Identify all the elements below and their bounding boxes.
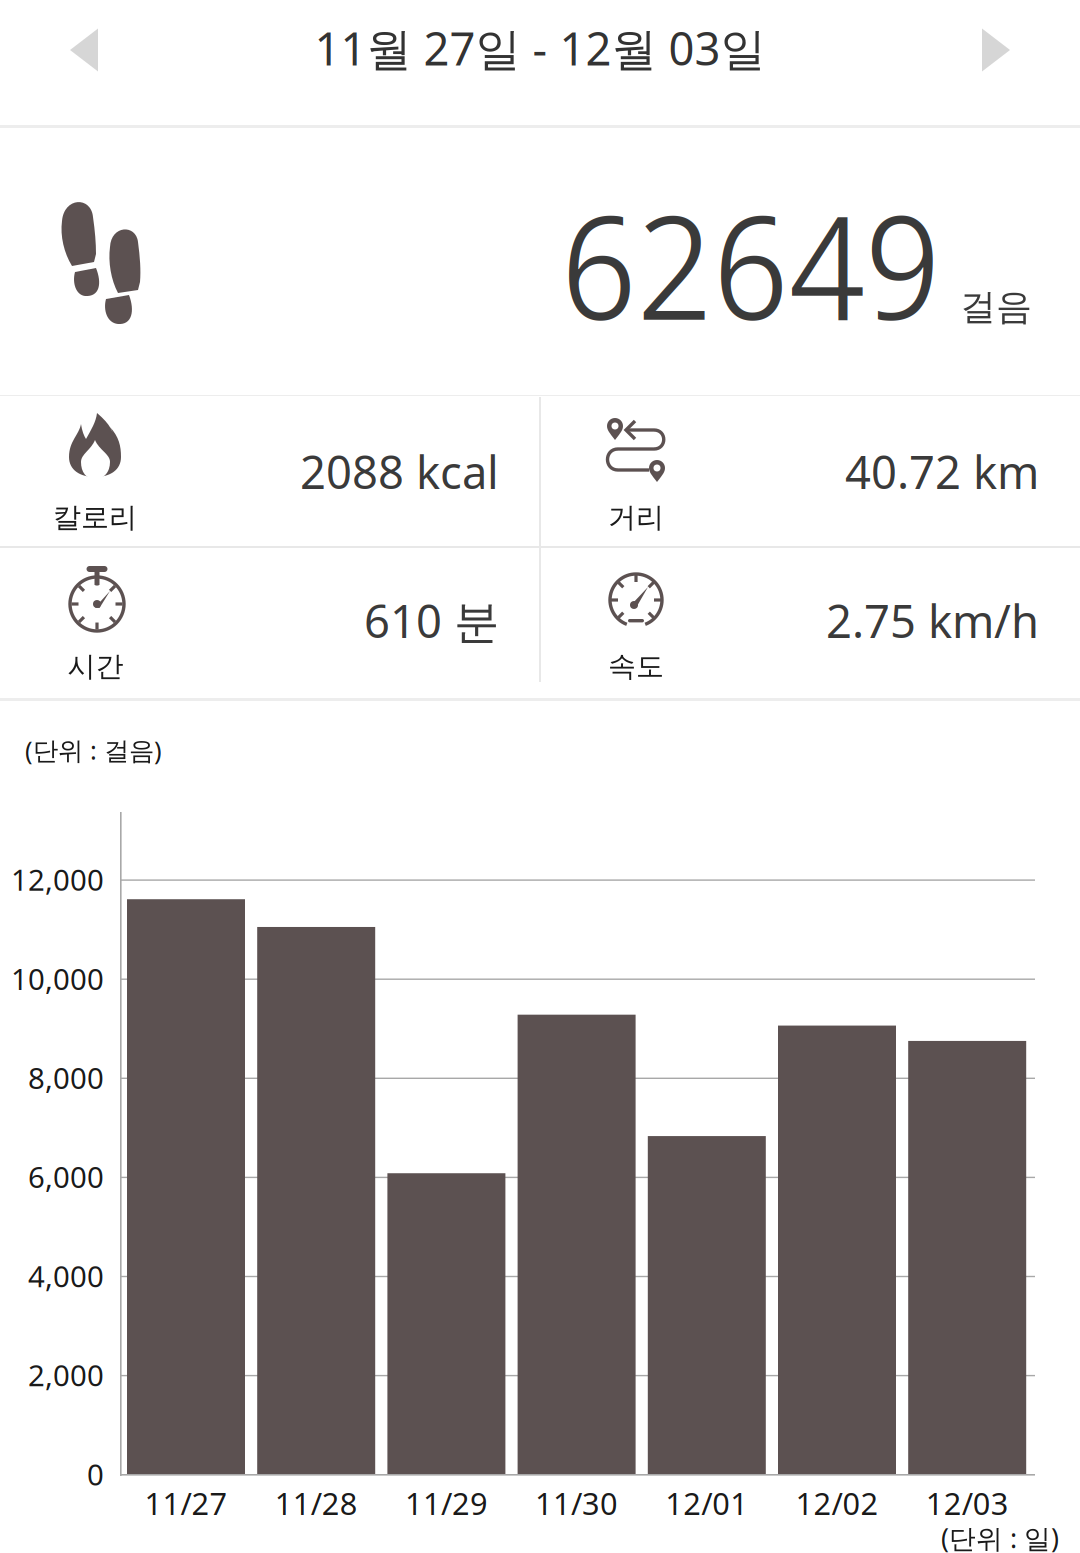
staticText: 0 <box>87 1454 104 1493</box>
button[interactable]: 11월 27일 - 12월 03일 <box>230 0 850 98</box>
staticText: 속도 <box>608 649 664 684</box>
staticText: 11/30 <box>535 1483 618 1523</box>
staticText: 8,000 <box>28 1058 104 1097</box>
staticText: 12,000 <box>11 860 104 899</box>
button[interactable]: 시간 <box>0 548 540 698</box>
staticText: 40.72 km <box>845 441 1039 502</box>
staticText: 4,000 <box>28 1256 104 1295</box>
staticText: 11월 27일 - 12월 03일 <box>314 18 765 78</box>
staticText: 2088 kcal <box>300 441 499 502</box>
staticText: 거리 <box>608 500 664 535</box>
button[interactable]: 속도 <box>540 548 1080 698</box>
staticText: (단위 : 일) <box>941 1520 1059 1553</box>
staticText: 62649 <box>561 166 941 362</box>
button[interactable]: 거리 <box>540 396 1080 546</box>
staticText: (단위 : 걸음) <box>25 733 162 767</box>
staticText: 걸음 <box>960 285 1032 329</box>
staticText: 6,000 <box>28 1157 104 1196</box>
staticText: 11/29 <box>405 1483 488 1523</box>
staticText: 11/27 <box>144 1483 227 1523</box>
button[interactable]: 칼로리 <box>0 396 540 546</box>
staticText: 11/28 <box>275 1483 358 1523</box>
staticText: 칼로리 <box>53 500 137 535</box>
staticText: 12/03 <box>926 1483 1009 1523</box>
staticText: 시간 <box>67 649 123 684</box>
button[interactable]: Next week <box>941 0 1051 100</box>
staticText: 2,000 <box>28 1355 104 1394</box>
staticText: 2.75 km/h <box>826 590 1039 651</box>
staticText: 10,000 <box>11 959 104 998</box>
staticText: 610 분 <box>364 590 499 651</box>
button[interactable]: Previous week <box>29 0 139 100</box>
staticText: 12/01 <box>665 1483 748 1523</box>
staticText: 12/02 <box>795 1483 878 1523</box>
